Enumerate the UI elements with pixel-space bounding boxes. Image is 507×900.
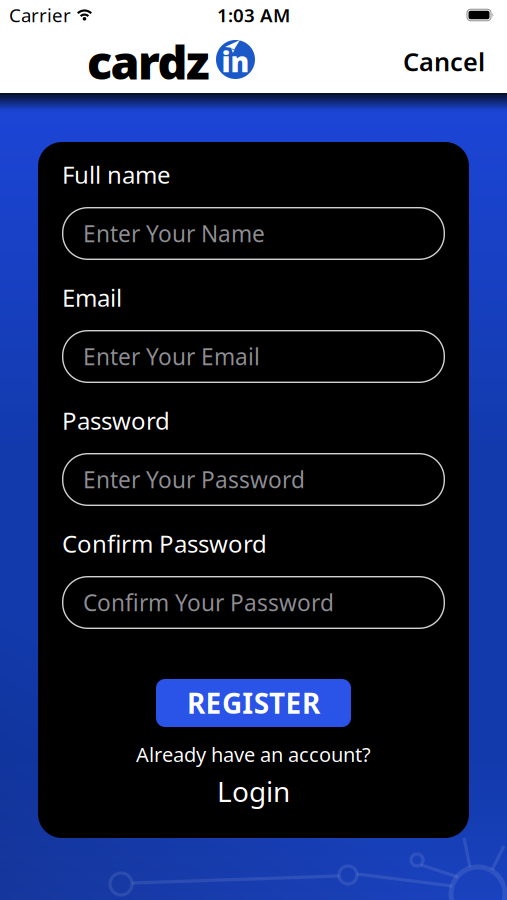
staticText: in	[221, 43, 249, 80]
staticText: Full name	[62, 159, 171, 190]
staticText: Login	[217, 773, 290, 810]
staticText: Confirm Your Password	[83, 587, 334, 617]
staticText: Carrier	[9, 3, 71, 27]
staticText: Email	[62, 282, 122, 313]
staticText: Already have an account?	[136, 741, 371, 768]
staticText: Enter Your Password	[83, 464, 305, 494]
staticText: REGISTER	[187, 684, 320, 722]
staticText: Password	[62, 405, 170, 436]
staticText: Confirm Password	[62, 528, 267, 559]
staticText: Cancel	[403, 45, 485, 78]
staticText: 1:03 AM	[217, 3, 290, 27]
staticText: cardz	[87, 30, 210, 92]
staticText: Enter Your Email	[83, 341, 260, 371]
staticText: Enter Your Name	[83, 218, 265, 248]
